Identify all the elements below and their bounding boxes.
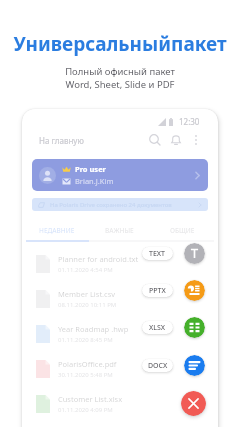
staticText: На главную (39, 135, 84, 146)
button[interactable]: НЕДАВНИЕ (26, 221, 88, 240)
button[interactable]: XLSX (184, 317, 205, 338)
button[interactable]: Pro user (32, 159, 208, 191)
staticText: ОБЩИЕ (170, 226, 195, 235)
button[interactable]: Close (181, 391, 206, 416)
staticText: Универсальныйпакет (13, 31, 227, 57)
staticText: 01.11.2020 8:45 PM (58, 336, 113, 344)
staticText: НЕДАВНИЕ (39, 226, 75, 235)
staticText: Pro user (75, 164, 106, 174)
button[interactable]: Search (147, 132, 163, 148)
staticText: Полный офисный пакет Word, Sheet, Slide … (65, 65, 175, 91)
staticText: Customer List.xlsx (58, 394, 123, 404)
button[interactable]: Member List.csv (36, 281, 214, 316)
button[interactable]: Year Roadmap .hwp (36, 316, 214, 351)
staticText: TEXT (149, 249, 166, 259)
staticText: Brian.J.Kim (75, 176, 114, 186)
button[interactable]: DOCX (184, 355, 205, 376)
staticText: Member List.csv (58, 289, 116, 299)
button[interactable]: TEXT (184, 243, 205, 264)
staticText: ВАЖНЫЕ (105, 226, 134, 235)
button[interactable]: Notifications (168, 132, 184, 148)
button[interactable]: ОБЩИЕ (151, 221, 214, 240)
staticText: 01.11.2020 4:09 PM (58, 406, 113, 414)
button[interactable]: На Polaris Drive сохранено 24 документов (32, 198, 208, 211)
staticText: PolarisOffice.pdf (58, 359, 117, 369)
staticText: 08.11.2020 10:11 PM (58, 301, 117, 309)
staticText: DOCX (148, 361, 168, 371)
button[interactable]: ВАЖНЫЕ (88, 221, 151, 240)
staticText: На Polaris Drive сохранено 24 документов (50, 201, 172, 209)
staticText: 12:30 (179, 116, 200, 127)
staticText: PPTX (149, 286, 166, 296)
button[interactable]: Customer List.xlsx (36, 386, 214, 421)
staticText: XLSX (149, 323, 166, 333)
staticText: 01.11.2020 4:54 PM (58, 266, 113, 274)
button[interactable]: More options (190, 134, 202, 146)
staticText: 30.11.2020 5:48 PM (58, 371, 113, 379)
button[interactable]: PolarisOffice.pdf (36, 351, 214, 386)
staticText: Year Roadmap .hwp (58, 324, 129, 334)
button[interactable]: Planner for android.txt (36, 246, 214, 281)
staticText: Planner for android.txt (58, 254, 139, 264)
button[interactable]: PPTX (184, 280, 205, 301)
